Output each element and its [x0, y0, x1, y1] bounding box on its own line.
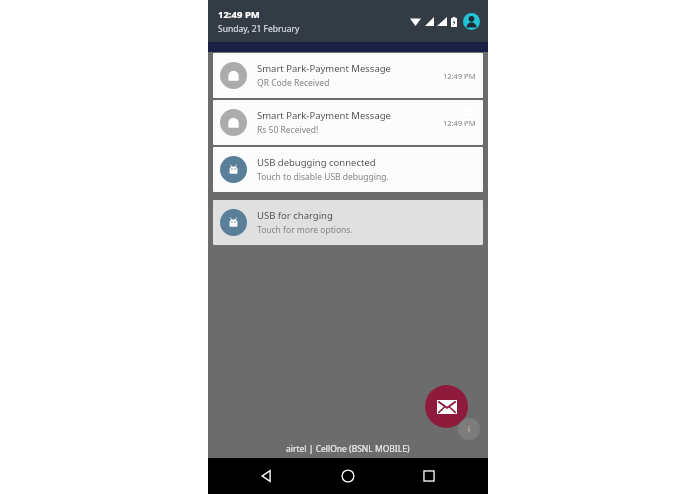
- button[interactable]: Smart Park-Payment Message: [213, 100, 483, 145]
- staticText: USB for charging: [257, 209, 333, 222]
- staticText: 12:49 PM: [218, 8, 260, 21]
- staticText: 12:49 PM: [443, 118, 476, 128]
- staticText: 12:49 PM: [443, 71, 476, 81]
- button[interactable]: USB for charging: [213, 200, 483, 245]
- staticText: airtel | CellOne (BSNL MOBILE): [286, 443, 410, 455]
- staticText: Smart Park-Payment Message: [257, 62, 391, 75]
- staticText: USB debugging connected: [257, 156, 376, 169]
- button[interactable]: Clear all notifications: [454, 102, 480, 128]
- staticText: Rs 50 Received!: [257, 124, 319, 136]
- button[interactable]: Recent apps: [407, 458, 451, 494]
- staticText: Touch for more options.: [257, 224, 353, 236]
- button[interactable]: User profile: [463, 13, 480, 30]
- staticText: Smart Park-Payment Message: [257, 109, 391, 122]
- staticText: QR Code Received: [257, 77, 330, 89]
- button[interactable]: Back: [245, 458, 289, 494]
- button[interactable]: Smart Park-Payment Message: [213, 53, 483, 98]
- staticText: Sunday, 21 February: [218, 23, 300, 35]
- button[interactable]: Compose message: [425, 385, 468, 428]
- button[interactable]: Scroll down: [458, 418, 480, 440]
- button[interactable]: Home: [326, 458, 370, 494]
- staticText: Touch to disable USB debugging.: [257, 171, 389, 183]
- button[interactable]: USB debugging connected: [213, 147, 483, 192]
